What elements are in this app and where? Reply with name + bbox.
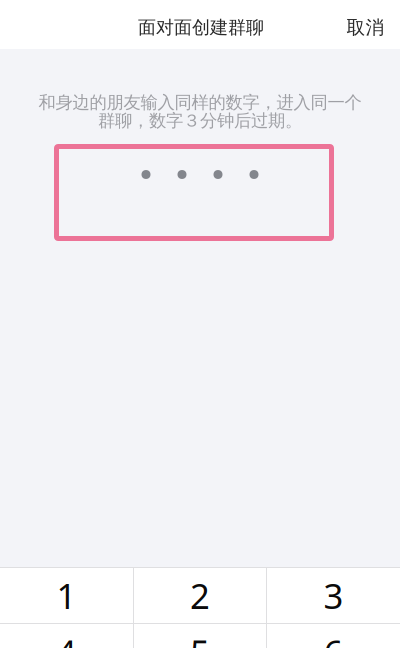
button[interactable]: 取消	[333, 5, 397, 49]
staticText: 4	[56, 629, 76, 648]
button[interactable]: 5	[133, 624, 266, 648]
staticText: 取消	[346, 16, 384, 39]
button[interactable]: 四位数字验证码输入框	[54, 144, 334, 241]
staticText: 6	[323, 629, 343, 648]
staticText: 2	[190, 572, 210, 618]
staticText: 和身边的朋友输入同样的数字，进入同一个	[38, 92, 361, 113]
button[interactable]: 3	[267, 567, 400, 623]
staticText: 5	[190, 629, 210, 648]
staticText: 1	[56, 572, 76, 618]
button[interactable]: 1	[0, 567, 133, 623]
staticText: 群聊，数字３分钟后过期。	[98, 110, 302, 131]
staticText: 3	[323, 572, 343, 618]
button[interactable]: 6	[267, 624, 400, 648]
button[interactable]: 2	[133, 567, 266, 623]
staticText: 面对面创建群聊	[138, 16, 264, 39]
button[interactable]: 4	[0, 624, 133, 648]
